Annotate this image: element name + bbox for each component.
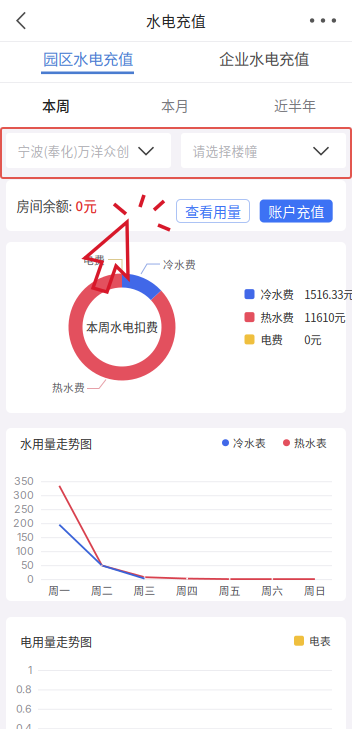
button[interactable]: 请选择楼幢 [181,133,346,168]
staticText: 100 [16,545,34,558]
staticText: 150 [17,531,34,544]
staticText: 热水表 [294,435,327,450]
staticText: 11610元 [304,309,345,325]
button[interactable]: Back [0,0,44,41]
staticText: 电用量走势图 [20,633,92,650]
staticText: 房间余额: [16,196,75,215]
button[interactable]: 园区水电充值 [0,42,176,82]
staticText: 200 [13,517,34,530]
staticText: 企业水电充值 [219,47,309,69]
staticText: 账户充值 [268,201,324,221]
staticText: 0 [27,573,34,586]
button[interactable]: 查看用量 [176,199,249,222]
button[interactable]: 近半年 [260,83,330,127]
button[interactable]: 本周 [21,83,91,127]
button[interactable]: 本月 [140,83,210,127]
button[interactable]: 宁波(奉化)万洋众创 [6,133,171,168]
staticText: 50 [21,559,34,572]
staticText: 0元 [304,331,321,348]
staticText: 350 [14,475,34,488]
staticText: 近半年 [274,95,316,115]
staticText: 热水费 [260,309,293,325]
staticText: 水用量走势图 [20,435,92,452]
staticText: 0.6 [16,702,32,715]
staticText: 周六 [261,582,283,598]
staticText: 1 [28,663,32,676]
staticText: 查看用量 [185,201,241,221]
staticText: 周日 [304,582,326,598]
button[interactable]: 账户充值 [260,199,333,222]
staticText: 0元 [75,196,96,215]
button[interactable]: 企业水电充值 [176,42,352,82]
staticText: 周三 [133,582,155,598]
staticText: 300 [13,489,34,502]
staticText: 本周 [42,95,70,115]
staticText: 园区水电充值 [43,47,133,69]
button[interactable]: More [299,0,347,41]
staticText: 0.8 [16,683,32,696]
staticText: 0.4 [16,722,32,729]
staticText: 本周水电扣费 [86,318,158,336]
staticText: 电表 [309,633,331,648]
staticText: 冷水费 [163,256,196,272]
staticText: 冷水费 [260,286,293,302]
staticText: 电费 [260,331,282,348]
staticText: 250 [14,503,34,516]
staticText: 周四 [176,582,198,598]
staticText: 本月 [161,95,189,115]
staticText: 周一 [48,582,70,598]
staticText: 周二 [91,582,113,598]
staticText: 水电充值 [146,10,206,31]
staticText: 请选择楼幢 [192,141,257,160]
staticText: 1516.33元 [304,286,352,302]
staticText: 冷水表 [233,435,266,450]
staticText: 热水费 [52,379,85,395]
staticText: 宁波(奉化)万洋众创 [17,141,129,160]
staticText: 周五 [219,582,241,598]
staticText: 电费 [83,252,105,267]
